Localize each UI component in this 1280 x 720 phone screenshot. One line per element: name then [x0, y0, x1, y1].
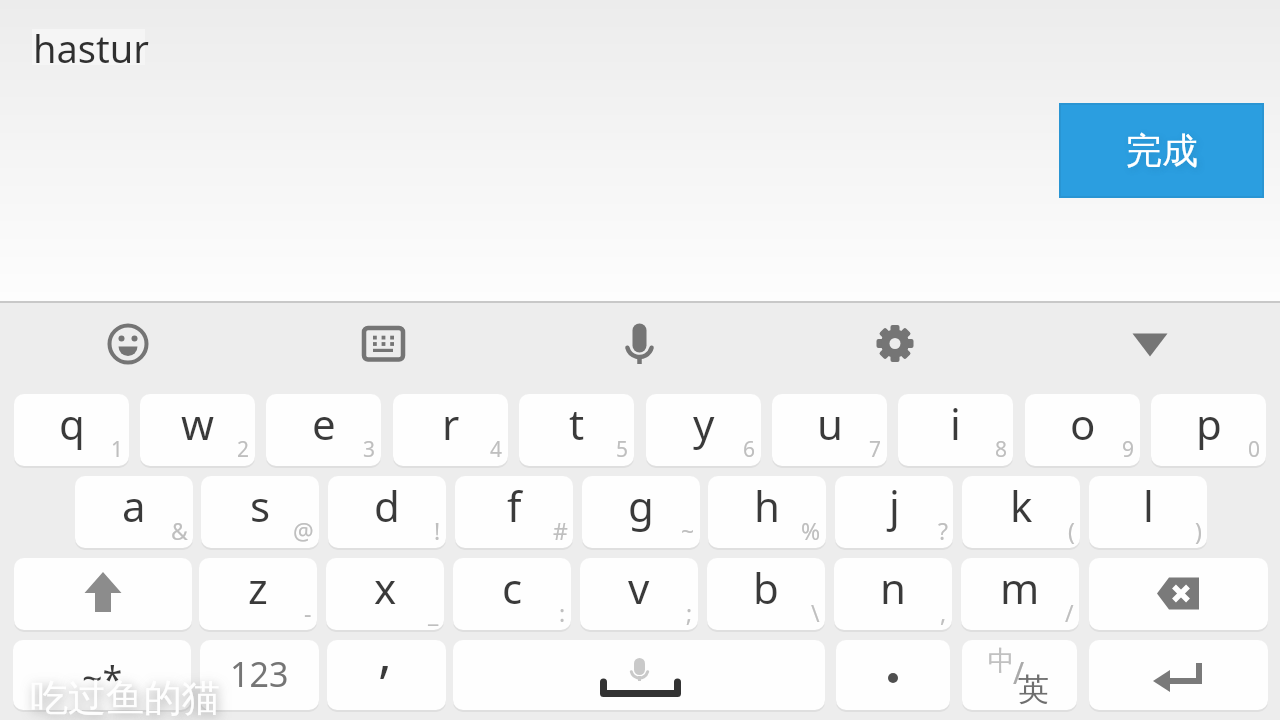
staticText: ?: [938, 515, 948, 546]
button[interactable]: d: [328, 476, 446, 548]
staticText: #: [553, 515, 568, 546]
button[interactable]: [14, 558, 192, 630]
staticText: u: [817, 395, 843, 452]
button[interactable]: a: [75, 476, 193, 548]
button[interactable]: [1116, 309, 1186, 379]
staticText: 2: [237, 435, 250, 464]
button[interactable]: [1089, 558, 1268, 630]
staticText: t: [569, 395, 585, 452]
button[interactable]: c: [453, 558, 571, 630]
staticText: :: [559, 597, 566, 628]
staticText: z: [248, 559, 268, 616]
staticText: y: [693, 395, 715, 452]
button[interactable]: t: [519, 394, 634, 466]
staticText: 1: [111, 435, 124, 464]
staticText: 123: [230, 651, 289, 697]
button[interactable]: x: [326, 558, 444, 630]
button[interactable]: m: [961, 558, 1079, 630]
staticText: -: [304, 597, 312, 628]
button[interactable]: [605, 309, 675, 379]
button[interactable]: 完成: [1059, 103, 1264, 198]
staticText: ~*: [82, 654, 123, 703]
button[interactable]: y: [646, 394, 761, 466]
staticText: &: [171, 515, 188, 546]
button[interactable]: [861, 309, 931, 379]
staticText: @: [293, 515, 314, 546]
button[interactable]: [836, 640, 950, 710]
button[interactable]: f: [455, 476, 573, 548]
button[interactable]: g: [582, 476, 700, 548]
staticText: 9: [1122, 435, 1135, 464]
button[interactable]: r: [393, 394, 508, 466]
button[interactable]: [327, 640, 446, 710]
staticText: ,: [940, 597, 947, 628]
staticText: j: [889, 477, 900, 534]
button[interactable]: z: [199, 558, 317, 630]
button[interactable]: o: [1025, 394, 1140, 466]
staticText: ;: [686, 597, 693, 628]
button[interactable]: ~*: [13, 640, 191, 710]
staticText: i: [950, 395, 961, 452]
staticText: ,: [378, 616, 392, 687]
staticText: ): [1195, 515, 1202, 546]
button[interactable]: j: [835, 476, 953, 548]
button[interactable]: n: [834, 558, 952, 630]
staticText: v: [628, 559, 650, 616]
button[interactable]: [962, 640, 1077, 710]
staticText: 7: [869, 435, 882, 464]
button[interactable]: v: [580, 558, 698, 630]
staticText: hastur: [33, 22, 149, 74]
staticText: o: [1070, 395, 1096, 452]
staticText: 吃过鱼的猫: [30, 674, 220, 720]
staticText: a: [122, 477, 146, 534]
button[interactable]: w: [140, 394, 255, 466]
staticText: \: [811, 597, 820, 628]
staticText: 5: [616, 435, 629, 464]
staticText: l: [1143, 477, 1154, 534]
button[interactable]: h: [708, 476, 826, 548]
button[interactable]: e: [266, 394, 381, 466]
staticText: g: [628, 477, 654, 534]
staticText: 4: [490, 435, 503, 464]
button[interactable]: [349, 309, 419, 379]
button[interactable]: [93, 309, 163, 379]
button[interactable]: i: [898, 394, 1013, 466]
button[interactable]: q: [14, 394, 129, 466]
button[interactable]: [1089, 640, 1268, 710]
button[interactable]: [453, 640, 825, 710]
staticText: 6: [743, 435, 756, 464]
staticText: w: [181, 395, 215, 452]
staticText: ~: [681, 515, 695, 546]
staticText: c: [502, 559, 523, 616]
staticText: e: [312, 395, 336, 452]
staticText: r: [442, 395, 460, 452]
staticText: p: [1196, 395, 1222, 452]
staticText: x: [374, 559, 397, 616]
staticText: s: [250, 477, 271, 534]
button[interactable]: 123: [200, 640, 319, 710]
staticText: 完成: [1126, 128, 1198, 173]
staticText: 中: [988, 644, 1015, 678]
staticText: d: [374, 477, 400, 534]
staticText: k: [1010, 477, 1033, 534]
staticText: (: [1068, 515, 1075, 546]
button[interactable]: p: [1151, 394, 1266, 466]
staticText: f: [507, 477, 522, 534]
staticText: /: [1013, 652, 1025, 693]
staticText: 0: [1248, 435, 1261, 464]
staticText: 8: [995, 435, 1008, 464]
button[interactable]: l: [1089, 476, 1207, 548]
button[interactable]: s: [201, 476, 319, 548]
staticText: /: [1065, 597, 1074, 628]
staticText: h: [754, 477, 780, 534]
staticText: n: [880, 559, 906, 616]
staticText: 英: [1018, 670, 1049, 709]
staticText: 3: [363, 435, 376, 464]
button[interactable]: u: [772, 394, 887, 466]
button[interactable]: k: [962, 476, 1080, 548]
staticText: !: [434, 515, 441, 546]
staticText: %: [801, 515, 821, 546]
staticText: b: [753, 559, 779, 616]
button[interactable]: b: [707, 558, 825, 630]
staticText: _: [428, 597, 439, 628]
